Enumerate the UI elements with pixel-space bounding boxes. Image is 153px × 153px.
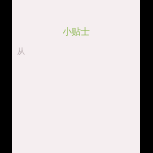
staticText: 从	[17, 46, 25, 56]
staticText: 小贴士	[62, 26, 89, 37]
